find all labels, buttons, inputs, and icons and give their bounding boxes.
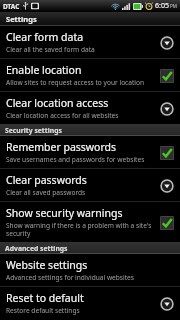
staticText: Website settings xyxy=(6,258,88,272)
button[interactable]: Open xyxy=(158,100,175,117)
button[interactable]: Open xyxy=(158,34,175,51)
button[interactable]: Open xyxy=(158,177,175,194)
staticText: PM xyxy=(170,3,177,9)
button[interactable]: Reset to default xyxy=(0,287,180,319)
staticText: Allow sites to request access to your lo… xyxy=(6,78,145,87)
staticText: Settings xyxy=(6,14,37,24)
staticText: Enable location xyxy=(6,63,82,77)
button[interactable]: Clear location access xyxy=(0,92,180,124)
button[interactable]: Website settings xyxy=(0,254,180,286)
button[interactable]: Enable location xyxy=(0,59,180,91)
button[interactable]: Enabled xyxy=(158,67,175,84)
button[interactable]: Remember passwords xyxy=(0,136,180,168)
staticText: Clear all saved passwords xyxy=(6,188,86,197)
staticText: Show security warnings xyxy=(6,206,123,220)
staticText: Clear all the saved form data xyxy=(6,45,95,54)
staticText: Reset to default xyxy=(6,291,84,305)
button[interactable]: Open xyxy=(158,295,175,312)
staticText: Advanced settings for individual website… xyxy=(6,273,134,282)
staticText: Clear location access for all websites xyxy=(6,111,119,120)
staticText: Advanced settings xyxy=(5,244,68,253)
staticText: Restore default settings xyxy=(6,306,80,315)
button[interactable]: Clear form data xyxy=(0,26,180,58)
button[interactable]: Show security warnings xyxy=(0,202,180,242)
staticText: 6:05 xyxy=(155,1,169,11)
staticText: Clear passwords xyxy=(6,173,87,187)
button[interactable]: Enabled xyxy=(158,144,175,161)
staticText: Security settings xyxy=(5,126,62,135)
button[interactable]: Enabled xyxy=(158,214,175,231)
staticText: Clear form data xyxy=(6,30,84,44)
button[interactable]: Clear passwords xyxy=(0,169,180,201)
staticText: Show warning if there is a problem with … xyxy=(6,221,154,238)
staticText: Save usernames and passwords for website… xyxy=(6,155,145,164)
staticText: Remember passwords xyxy=(6,140,117,154)
staticText: Clear location access xyxy=(6,96,109,110)
staticText: DTAC xyxy=(3,2,20,11)
